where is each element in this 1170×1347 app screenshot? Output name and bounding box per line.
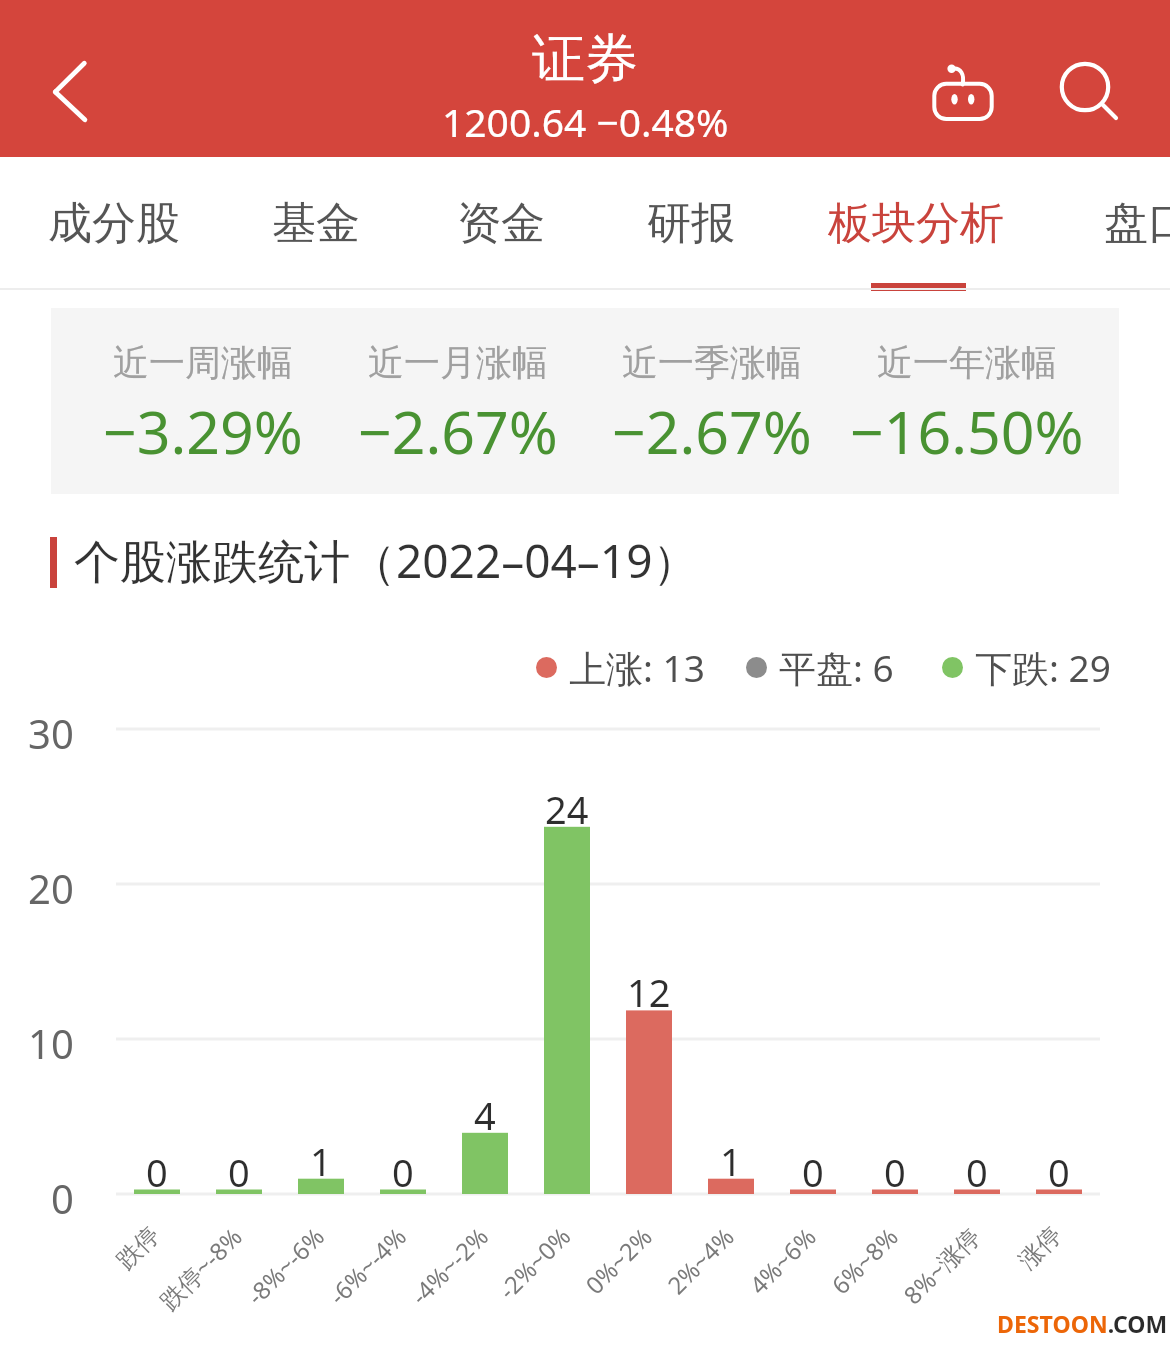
staticText: 近一月涨幅 <box>368 340 548 385</box>
staticText: 资金 <box>457 196 545 251</box>
staticText: 0 <box>228 1146 250 1198</box>
staticText: DESTOON.COM <box>997 1308 1168 1339</box>
staticText: 近一季涨幅 <box>622 340 802 385</box>
staticText: 平盘: 6 <box>779 642 894 693</box>
staticText: 0 <box>392 1146 414 1198</box>
staticText: -6%~-4% <box>321 1220 413 1311</box>
button[interactable]: 上涨: 13 <box>536 642 705 693</box>
staticText: 30 <box>28 706 74 760</box>
staticText: 盘口 <box>1104 196 1170 251</box>
staticText: −16.50% <box>850 391 1084 471</box>
staticText: 涨停 <box>1012 1220 1068 1275</box>
button[interactable]: 资金 <box>371 157 631 290</box>
staticText: 近一年涨幅 <box>877 340 1057 385</box>
staticText: -2%~0% <box>491 1220 577 1306</box>
staticText: 10 <box>28 1016 74 1070</box>
staticText: 4 <box>474 1089 496 1141</box>
staticText: 4%~6% <box>742 1220 823 1301</box>
staticText: 2%~4% <box>660 1220 741 1301</box>
staticText: 1 <box>310 1135 332 1187</box>
staticText: 1 <box>720 1135 742 1187</box>
staticText: 12 <box>627 966 671 1018</box>
button[interactable]: 个股涨跌统计（2022–04–19） <box>74 529 699 592</box>
staticText: 1200.64 −0.48% <box>442 95 729 148</box>
button[interactable]: 基金 <box>186 157 446 290</box>
staticText: 8%~涨停 <box>896 1220 987 1311</box>
button[interactable]: 成分股 <box>0 157 244 290</box>
staticText: −3.29% <box>103 391 303 471</box>
button[interactable]: 研报 <box>561 157 821 290</box>
staticText: −2.67% <box>358 391 558 471</box>
staticText: 0 <box>966 1146 988 1198</box>
staticText: 6%~8% <box>824 1220 905 1301</box>
staticText: 0 <box>1048 1146 1070 1198</box>
staticText: 近一周涨幅 <box>113 340 293 385</box>
staticText: 下跌: 29 <box>975 642 1111 693</box>
staticText: 个股涨跌统计（2022–04–19） <box>74 529 699 592</box>
staticText: 跌停 <box>110 1220 166 1275</box>
staticText: 板块分析 <box>828 196 1004 251</box>
staticText: 成分股 <box>48 196 180 251</box>
staticText: 24 <box>545 783 589 835</box>
staticText: -4%~-2% <box>403 1220 495 1311</box>
button[interactable]: 板块分析 <box>786 157 1046 290</box>
staticText: 0 <box>51 1171 74 1225</box>
staticText: -8%~-6% <box>239 1220 331 1311</box>
staticText: 0 <box>884 1146 906 1198</box>
button[interactable]: Search <box>1040 44 1135 140</box>
staticText: −2.67% <box>612 391 812 471</box>
button[interactable]: AI assistant <box>913 44 1013 140</box>
staticText: 上涨: 13 <box>569 642 705 693</box>
staticText: 研报 <box>647 196 735 251</box>
button[interactable]: 下跌: 29 <box>942 642 1111 693</box>
button[interactable]: 盘口 <box>1018 157 1170 290</box>
button[interactable]: 平盘: 6 <box>746 642 894 693</box>
staticText: 0%~2% <box>578 1220 659 1301</box>
button[interactable]: Back <box>25 46 115 136</box>
staticText: 跌停~-8% <box>152 1220 249 1316</box>
staticText: 0 <box>146 1146 168 1198</box>
staticText: 0 <box>802 1146 824 1198</box>
staticText: 证券 <box>532 26 638 93</box>
staticText: 基金 <box>272 196 360 251</box>
staticText: 20 <box>28 861 74 915</box>
